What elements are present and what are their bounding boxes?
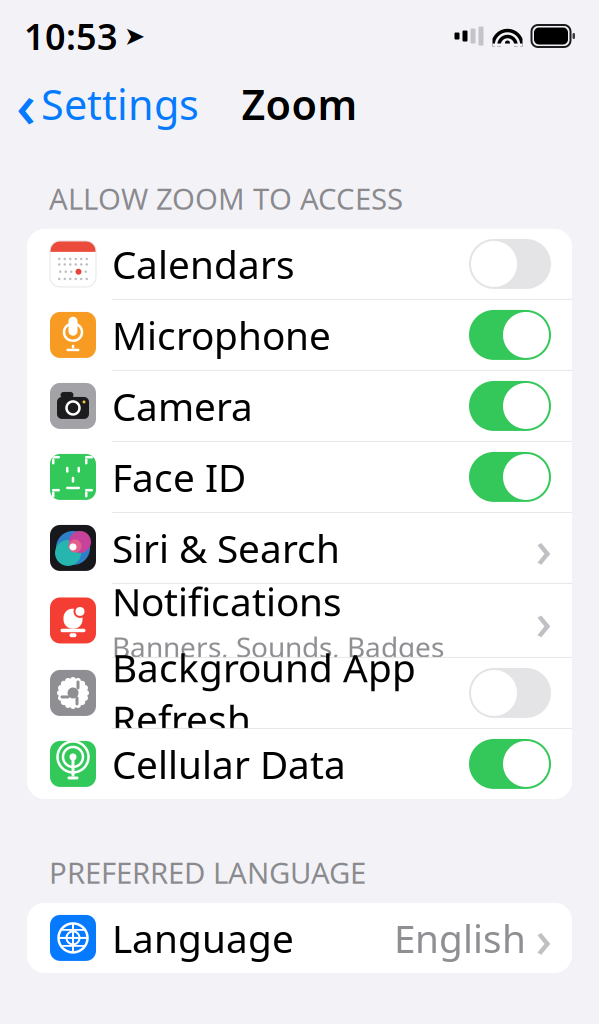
staticText: English <box>394 912 526 963</box>
button[interactable]: Microphone <box>27 300 572 370</box>
staticText: Notifications <box>112 576 342 627</box>
button[interactable]: ‹ <box>0 57 199 151</box>
staticText: Zoom <box>241 77 357 131</box>
staticText: Camera <box>112 380 253 432</box>
button[interactable]: Face ID <box>27 442 572 512</box>
staticText: Calendars <box>112 238 295 290</box>
staticText: Background App Refresh <box>112 642 416 744</box>
staticText: Settings <box>41 77 199 131</box>
button[interactable]: Siri & Search <box>27 513 572 583</box>
button[interactable]: Camera <box>27 371 572 441</box>
button[interactable]: Cellular Data <box>27 729 572 799</box>
button[interactable]: Notifications <box>27 584 572 657</box>
button[interactable]: Calendars <box>27 229 572 299</box>
staticText: Siri & Search <box>112 522 340 574</box>
staticText: Microphone <box>112 309 331 361</box>
staticText: ➤ <box>124 22 145 50</box>
button[interactable]: Background App Refresh <box>27 658 572 728</box>
staticText: ‹ <box>16 63 36 145</box>
staticText: › <box>535 514 552 582</box>
staticText: Banners, Sounds, Badges <box>112 628 444 665</box>
staticText: › <box>535 904 552 972</box>
staticText: Face ID <box>112 451 246 503</box>
staticText: Language <box>112 912 294 963</box>
staticText: PREFERRED LANGUAGE <box>49 853 366 892</box>
staticText: 10:53 <box>24 12 118 60</box>
staticText: › <box>535 587 552 654</box>
staticText: Cellular Data <box>112 738 346 790</box>
button[interactable]: Language <box>27 903 572 973</box>
staticText: ALLOW ZOOM TO ACCESS <box>49 179 403 218</box>
